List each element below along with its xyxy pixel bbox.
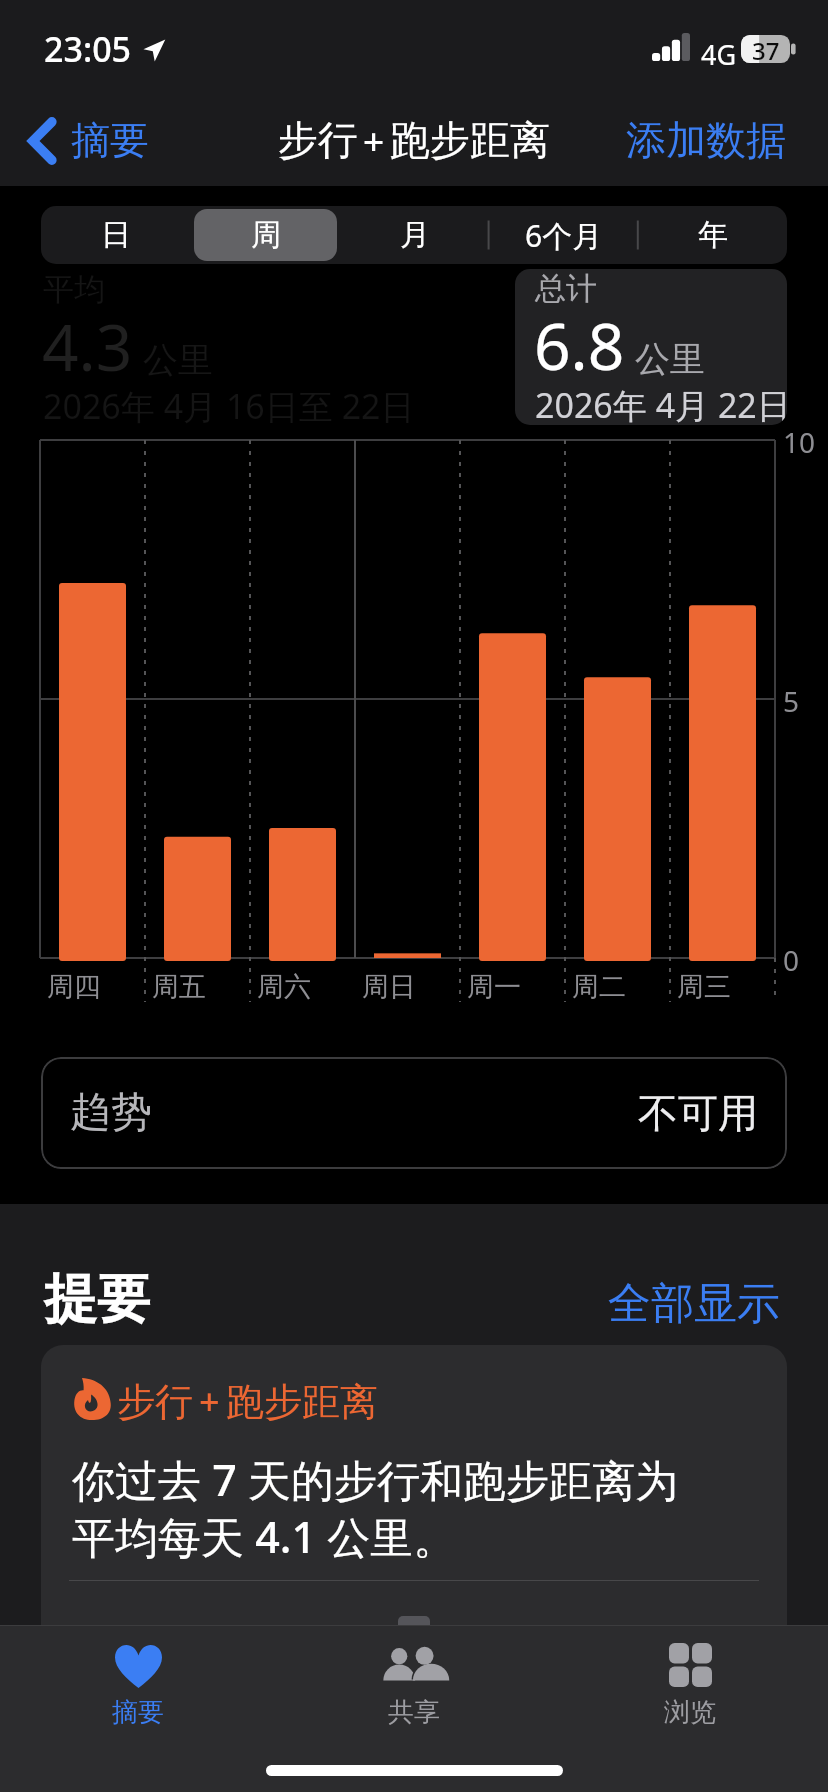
staticText: 4.3 xyxy=(42,303,133,390)
button[interactable]: 6个月 xyxy=(492,209,635,261)
other: 浏览 xyxy=(669,1643,712,1687)
staticText: 总计 xyxy=(535,269,597,308)
button[interactable]: 年 xyxy=(641,209,784,261)
staticText: 提要 xyxy=(44,1266,150,1333)
staticText: 步行 xyxy=(278,115,358,165)
staticText: + xyxy=(199,1377,220,1426)
button[interactable]: 趋势 xyxy=(41,1057,787,1169)
button[interactable]: 日 xyxy=(44,209,188,261)
staticText: 摘要 xyxy=(71,116,149,165)
staticText: 6个月 xyxy=(525,215,603,256)
staticText: 6.8 xyxy=(534,302,625,389)
staticText: 浏览 xyxy=(664,1696,716,1729)
button[interactable]: 添加数据 xyxy=(618,107,794,173)
button[interactable]: 周 xyxy=(194,209,337,261)
other: 摘要 xyxy=(115,1643,162,1688)
staticText: + xyxy=(363,115,385,165)
staticText: 4G xyxy=(701,36,737,73)
staticText: 跑步距离 xyxy=(390,115,550,165)
button[interactable]: 共享 xyxy=(276,1626,552,1792)
button[interactable]: 全部显示 xyxy=(608,1277,780,1331)
staticText: 2026年 4月 22日 xyxy=(535,382,787,425)
staticText: 周六 xyxy=(257,970,311,1004)
staticText: 10 xyxy=(783,423,816,461)
button[interactable]: 步行 xyxy=(41,1345,787,1675)
staticText: 不可用 xyxy=(638,1088,758,1138)
staticText: 全部显示 xyxy=(608,1277,780,1331)
staticText: 周四 xyxy=(47,970,101,1004)
staticText: 周 xyxy=(251,216,281,254)
staticText: 周一 xyxy=(467,970,521,1004)
staticText: 共享 xyxy=(388,1696,440,1729)
staticText: 平均 xyxy=(43,270,105,309)
staticText: 公里 xyxy=(635,337,705,381)
staticText: 添加数据 xyxy=(626,115,786,165)
staticText: 跑步距离 xyxy=(226,1378,378,1426)
staticText: 日 xyxy=(101,216,131,254)
button[interactable]: 摘要 xyxy=(0,1626,276,1792)
staticText: 摘要 xyxy=(112,1696,164,1729)
button[interactable]: 摘要 xyxy=(21,108,157,173)
staticText: 周五 xyxy=(152,970,206,1004)
staticText: 月 xyxy=(400,216,430,254)
other: 共享 xyxy=(382,1643,447,1687)
staticText: 5 xyxy=(783,682,800,720)
staticText: 周日 xyxy=(362,970,416,1004)
staticText: 你过去 7 天的步行和跑步距离为 平均每天 4.1 公里。 xyxy=(72,1450,678,1566)
staticText: 趋势 xyxy=(70,1087,152,1139)
button[interactable]: 月 xyxy=(343,209,486,261)
staticText: 年 xyxy=(698,216,728,254)
staticText: 周三 xyxy=(677,970,731,1004)
staticText: 37 xyxy=(752,34,780,62)
staticText: 23:05 xyxy=(44,26,132,72)
staticText: 周二 xyxy=(572,970,626,1004)
staticText: 2026年 4月 16日至 22日 xyxy=(43,383,415,429)
staticText: 0 xyxy=(783,941,800,979)
button[interactable]: 浏览 xyxy=(552,1626,828,1792)
staticText: 步行 xyxy=(117,1378,193,1426)
staticText: 公里 xyxy=(143,338,213,382)
